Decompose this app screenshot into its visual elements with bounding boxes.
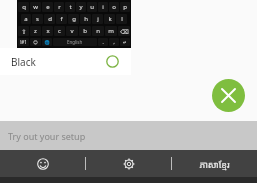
staticText: .	[102, 39, 104, 45]
staticText: k	[108, 15, 112, 23]
button[interactable]: e	[42, 2, 53, 12]
staticText: x	[46, 27, 50, 35]
staticText: z	[34, 27, 37, 35]
button[interactable]: y	[76, 2, 86, 12]
staticText: b	[83, 27, 87, 35]
button[interactable]: t	[65, 2, 75, 12]
button[interactable]: ↵	[120, 38, 130, 46]
staticText: r	[58, 3, 61, 11]
staticText: u	[90, 3, 94, 11]
button[interactable]: x	[42, 26, 53, 36]
button[interactable]: ភាសាខ្មែរ	[172, 150, 257, 177]
button[interactable]: Emoji	[0, 150, 85, 177]
staticText: m	[108, 27, 114, 35]
staticText: a	[24, 15, 28, 23]
button[interactable]: j	[92, 14, 103, 24]
staticText: n	[96, 27, 100, 35]
button[interactable]: q	[18, 2, 29, 12]
button[interactable]: n	[92, 26, 104, 36]
button[interactable]: v	[66, 26, 78, 36]
button[interactable]: h	[80, 14, 91, 24]
button[interactable]: ☺	[30, 38, 41, 46]
button[interactable]: 🌐	[42, 38, 52, 46]
button[interactable]: z	[30, 26, 41, 36]
staticText: c	[58, 27, 61, 35]
staticText: 🌐	[44, 40, 50, 45]
button[interactable]: k	[104, 14, 115, 24]
staticText: q	[22, 3, 26, 11]
staticText: d	[48, 15, 52, 23]
staticText: v	[70, 27, 74, 35]
staticText: e	[46, 3, 50, 11]
staticText: ⇧	[21, 28, 27, 35]
button[interactable]: l	[116, 14, 127, 24]
button[interactable]: w	[30, 2, 41, 12]
button[interactable]: p	[120, 2, 130, 12]
button[interactable]: f	[56, 14, 67, 24]
button[interactable]: s	[32, 14, 43, 24]
staticText: j	[97, 15, 99, 23]
button[interactable]: o	[109, 2, 119, 12]
staticText: p	[123, 3, 127, 11]
button[interactable]: Try out your setup	[0, 121, 257, 150]
button[interactable]: u	[87, 2, 97, 12]
staticText: ⌫	[120, 28, 129, 35]
staticText: ភាសាខ្មែរ	[199, 158, 230, 170]
button[interactable]: Close	[212, 79, 245, 112]
button[interactable]: !#1	[18, 38, 29, 46]
button[interactable]: .	[98, 38, 108, 46]
button[interactable]: a	[21, 14, 31, 24]
staticText: ,	[113, 39, 115, 45]
staticText: English	[67, 39, 83, 45]
staticText: g	[72, 15, 76, 23]
button[interactable]: ⇧	[18, 26, 29, 36]
staticText: !#1	[20, 39, 27, 45]
button[interactable]: g	[68, 14, 79, 24]
staticText: s	[36, 15, 39, 23]
button[interactable]: r	[54, 2, 64, 12]
staticText: h	[84, 15, 88, 23]
button[interactable]: Settings	[86, 150, 171, 177]
button[interactable]: English	[53, 38, 97, 46]
button[interactable]: ,	[109, 38, 119, 46]
staticText: l	[121, 15, 123, 23]
staticText: t	[69, 3, 72, 11]
staticText: Black	[11, 55, 36, 69]
button[interactable]: b	[79, 26, 91, 36]
button[interactable]: d	[44, 14, 55, 24]
staticText: i	[102, 3, 104, 11]
button[interactable]: ⌫	[118, 26, 130, 36]
staticText: w	[33, 3, 38, 11]
button[interactable]: m	[105, 26, 117, 36]
staticText: o	[112, 3, 116, 11]
button[interactable]: Black	[0, 48, 131, 75]
staticText: f	[60, 15, 63, 23]
staticText: Try out your setup	[8, 130, 86, 142]
staticText: ☺	[33, 40, 38, 45]
staticText: y	[79, 3, 83, 11]
staticText: ↵	[123, 40, 127, 45]
button[interactable]: c	[54, 26, 65, 36]
button[interactable]: i	[98, 2, 108, 12]
